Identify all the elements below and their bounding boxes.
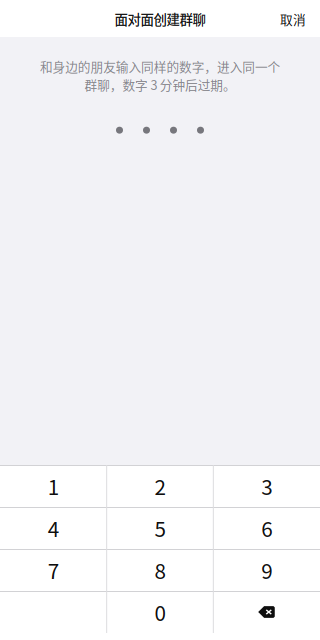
staticText: 和身边的朋友输入同样的数字，进入同一个 群聊，数字 3 分钟后过期。 [40,57,280,94]
button[interactable]: 3 [213,465,320,507]
button[interactable]: 9 [213,549,320,591]
staticText: 9 [261,555,272,585]
button[interactable]: 6 [213,507,320,549]
button[interactable]: 1 [0,465,107,507]
button[interactable]: 8 [107,549,213,591]
staticText: 2 [154,471,165,501]
button[interactable]: 5 [107,507,213,549]
staticText: 取消 [280,10,306,28]
staticText: 7 [48,555,59,585]
staticText: 6 [261,513,272,543]
button[interactable]: 0 [107,591,213,633]
button[interactable]: 取消 [280,9,320,28]
staticText: 5 [154,513,165,543]
button[interactable]: 2 [107,465,213,507]
staticText: 4 [48,513,59,543]
staticText: 0 [154,597,165,627]
staticText: 面对面创建群聊 [114,9,205,29]
staticText: 3 [261,471,272,501]
button[interactable]: Delete [213,591,320,633]
staticText: 8 [154,555,165,585]
staticText: 1 [48,471,59,501]
button[interactable]: 7 [0,549,107,591]
button[interactable]: 4 [0,507,107,549]
